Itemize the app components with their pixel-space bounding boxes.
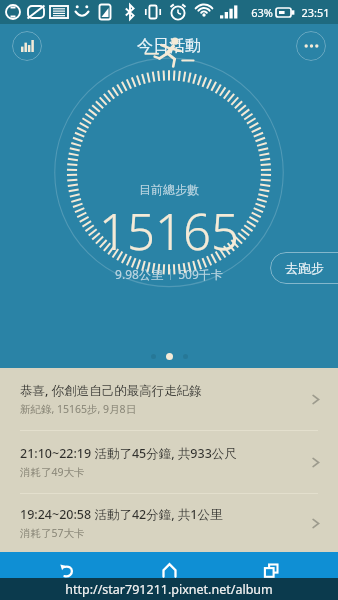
button[interactable]: 21:10~22:19 活動了45分鐘, 共933公尺 [0,431,338,493]
staticText: 今日活動 [137,36,201,56]
staticText: 9.98公里 [115,266,163,282]
staticText: 19:24~20:58 活動了42分鐘, 共1公里 [20,506,223,523]
button[interactable]: More options [296,31,326,61]
staticText: 恭喜, 你創造自己的最高行走紀錄 [20,382,202,399]
staticText: 去跑步 [285,260,324,276]
button[interactable]: Recents [258,552,284,578]
staticText: 15165 [99,198,239,265]
staticText: http://star791211.pixnet.net/album [65,581,273,598]
staticText: 目前總步數 [139,182,199,197]
staticText: 21:10~22:19 活動了45分鐘, 共933公尺 [20,445,237,462]
staticText: 消耗了49大卡 [20,465,85,479]
staticText: 509千卡 [178,266,223,282]
staticText: 23:51 [301,5,330,20]
button[interactable]: 去跑步 [270,252,338,284]
button[interactable]: Statistics [12,31,42,61]
button[interactable]: 19:24~20:58 活動了42分鐘, 共1公里 [0,494,338,552]
button[interactable]: 恭喜, 你創造自己的最高行走紀錄 [0,368,338,430]
staticText: 消耗了57大卡 [20,526,85,540]
button[interactable]: Back [54,552,80,578]
button[interactable]: Home [156,552,182,578]
staticText: 新紀錄, 15165步, 9月8日 [20,402,137,416]
staticText: 63% [251,5,273,20]
